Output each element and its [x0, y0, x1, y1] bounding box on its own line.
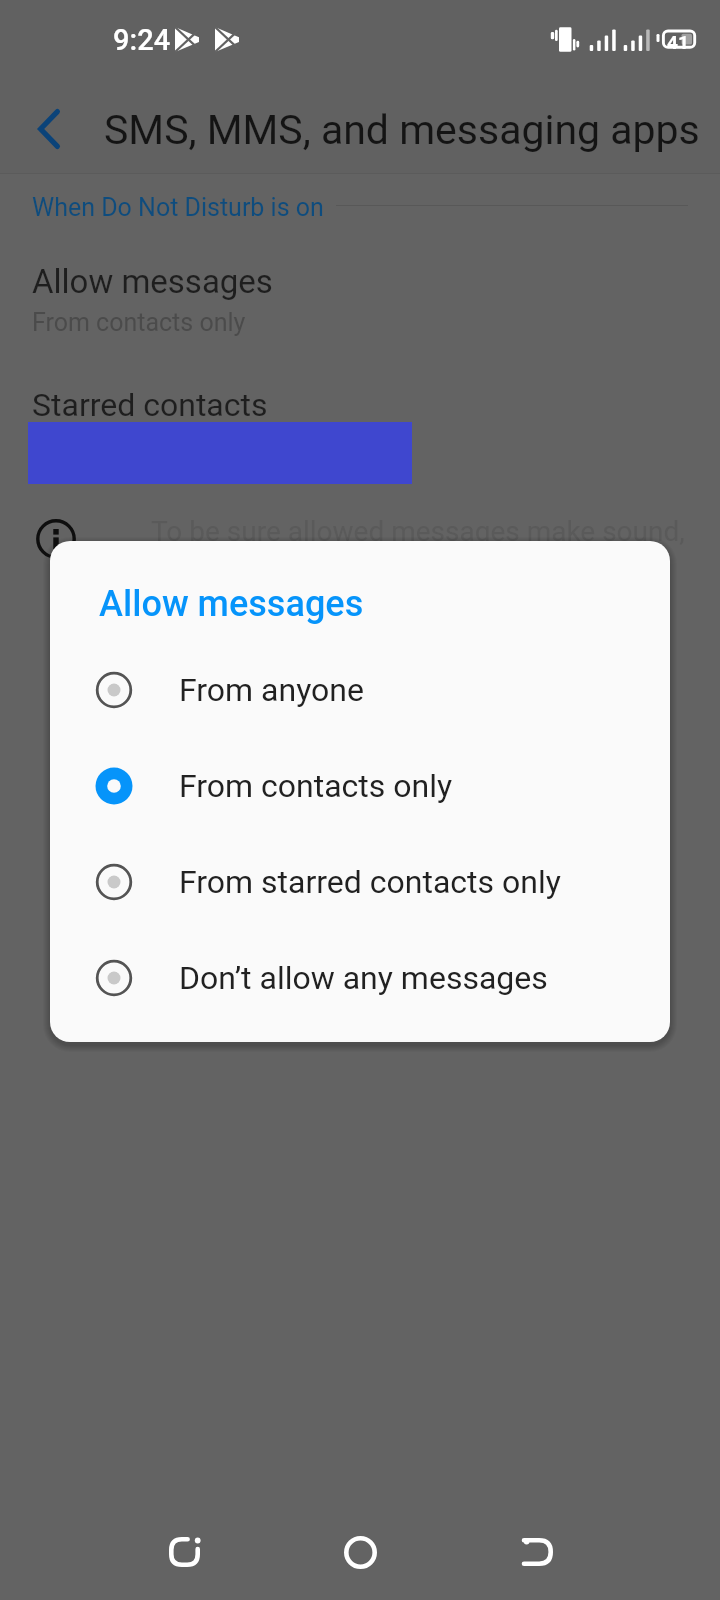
staticText: To be sure allowed messages make sound, … [151, 515, 685, 590]
button[interactable]: Recent apps [140, 1508, 228, 1596]
staticText: Allow messages [99, 583, 364, 625]
button[interactable]: Navigate up [13, 93, 85, 165]
button[interactable]: From anyone [50, 642, 670, 738]
button[interactable]: Allow messages [0, 252, 720, 332]
staticText: Allow messages [32, 262, 273, 301]
staticText: When Do Not Disturb is on [32, 193, 324, 222]
button[interactable]: From contacts only [50, 738, 670, 834]
staticText: Starred contacts [32, 386, 268, 424]
staticText: Don’t allow any messages [179, 959, 548, 997]
button[interactable]: Home [316, 1508, 404, 1596]
staticText: From starred contacts only [179, 863, 561, 901]
staticText: From contacts only [179, 767, 453, 805]
staticText: From contacts only [32, 308, 246, 337]
staticText: SMS, MMS, and messaging apps [104, 106, 700, 154]
button[interactable]: From starred contacts only [50, 834, 670, 930]
staticText: 41 [667, 31, 689, 53]
button[interactable]: Back [494, 1508, 582, 1596]
staticText: 9:24 [113, 23, 171, 57]
button[interactable]: Starred contacts [0, 376, 720, 466]
staticText: From anyone [179, 671, 364, 709]
button[interactable]: Don’t allow any messages [50, 930, 670, 1026]
